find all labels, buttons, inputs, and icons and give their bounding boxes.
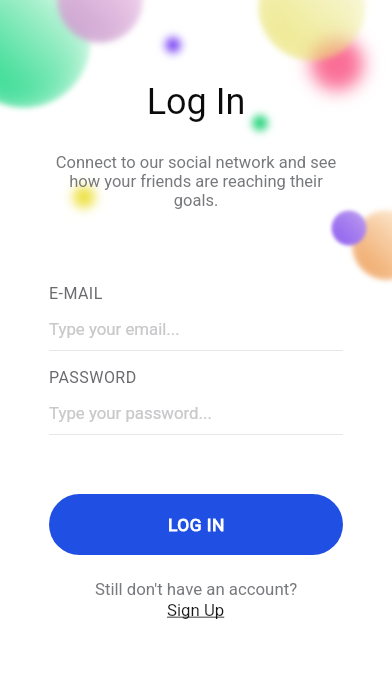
button[interactable]: LOG IN: [49, 494, 343, 555]
button[interactable]: Sign Up: [167, 600, 225, 620]
staticText: PASSWORD: [49, 368, 137, 387]
staticText: Log In: [0, 81, 392, 123]
staticText: E-MAIL: [49, 284, 103, 303]
staticText: Connect to our social network and see ho…: [46, 153, 346, 210]
staticText: LOG IN: [168, 515, 225, 535]
staticText: Type your email...: [49, 319, 180, 339]
staticText: Sign Up: [167, 600, 225, 620]
staticText: Type your password...: [49, 403, 212, 423]
staticText: Still don't have an account?: [0, 579, 392, 599]
